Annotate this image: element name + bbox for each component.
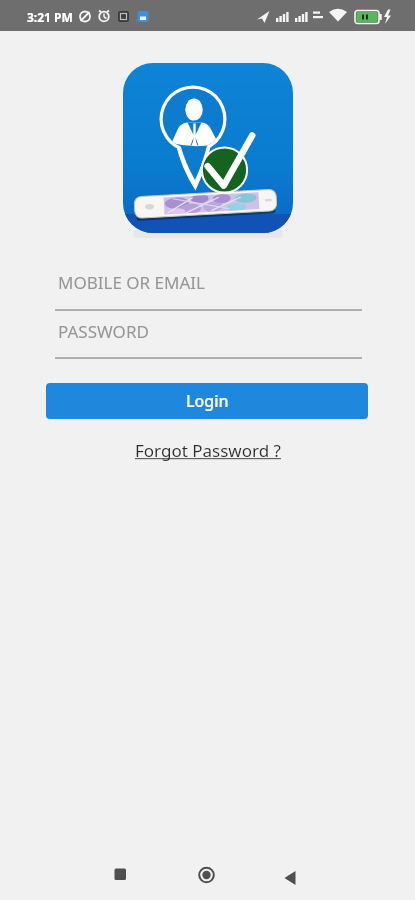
button[interactable]: Login xyxy=(46,383,368,419)
button[interactable]: PASSWORD xyxy=(55,313,362,359)
button[interactable]: MOBILE OR EMAIL xyxy=(55,265,362,311)
button[interactable] xyxy=(266,848,314,896)
button[interactable]: Forgot Password ? xyxy=(129,437,287,464)
staticText: MOBILE OR EMAIL xyxy=(58,271,205,294)
button[interactable] xyxy=(96,848,144,896)
button[interactable] xyxy=(182,848,230,896)
staticText: PASSWORD xyxy=(58,320,149,343)
staticText: Forgot Password ? xyxy=(135,439,281,462)
staticText: 3:21 PM xyxy=(27,9,73,25)
staticText: Login xyxy=(186,390,229,412)
